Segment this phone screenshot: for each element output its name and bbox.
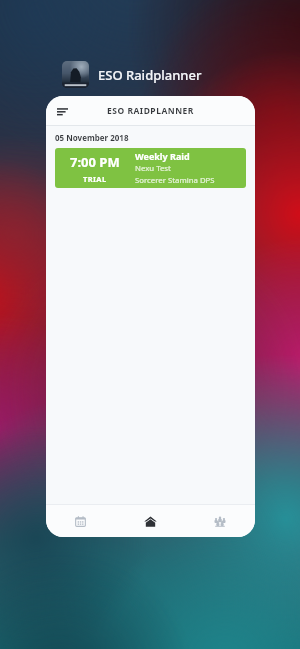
staticText: 05 November 2018 bbox=[55, 132, 129, 143]
button[interactable]: Home bbox=[115, 505, 185, 537]
button[interactable]: Calendar bbox=[46, 505, 115, 537]
staticText: 7:00 PM bbox=[70, 153, 120, 171]
button[interactable]: Guild members bbox=[185, 505, 255, 537]
staticText: Nexu Test bbox=[135, 163, 171, 174]
button[interactable]: 7:00 PM bbox=[55, 148, 246, 188]
staticText: Weekly Raid bbox=[135, 150, 190, 162]
staticText: Sorcerer Stamina DPS bbox=[135, 175, 215, 186]
button[interactable]: Open navigation menu bbox=[51, 100, 73, 122]
staticText: ESO Raidplanner bbox=[98, 66, 202, 84]
staticText: TRIAL bbox=[83, 174, 107, 184]
staticText: ESO RAIDPLANNER bbox=[107, 105, 194, 117]
